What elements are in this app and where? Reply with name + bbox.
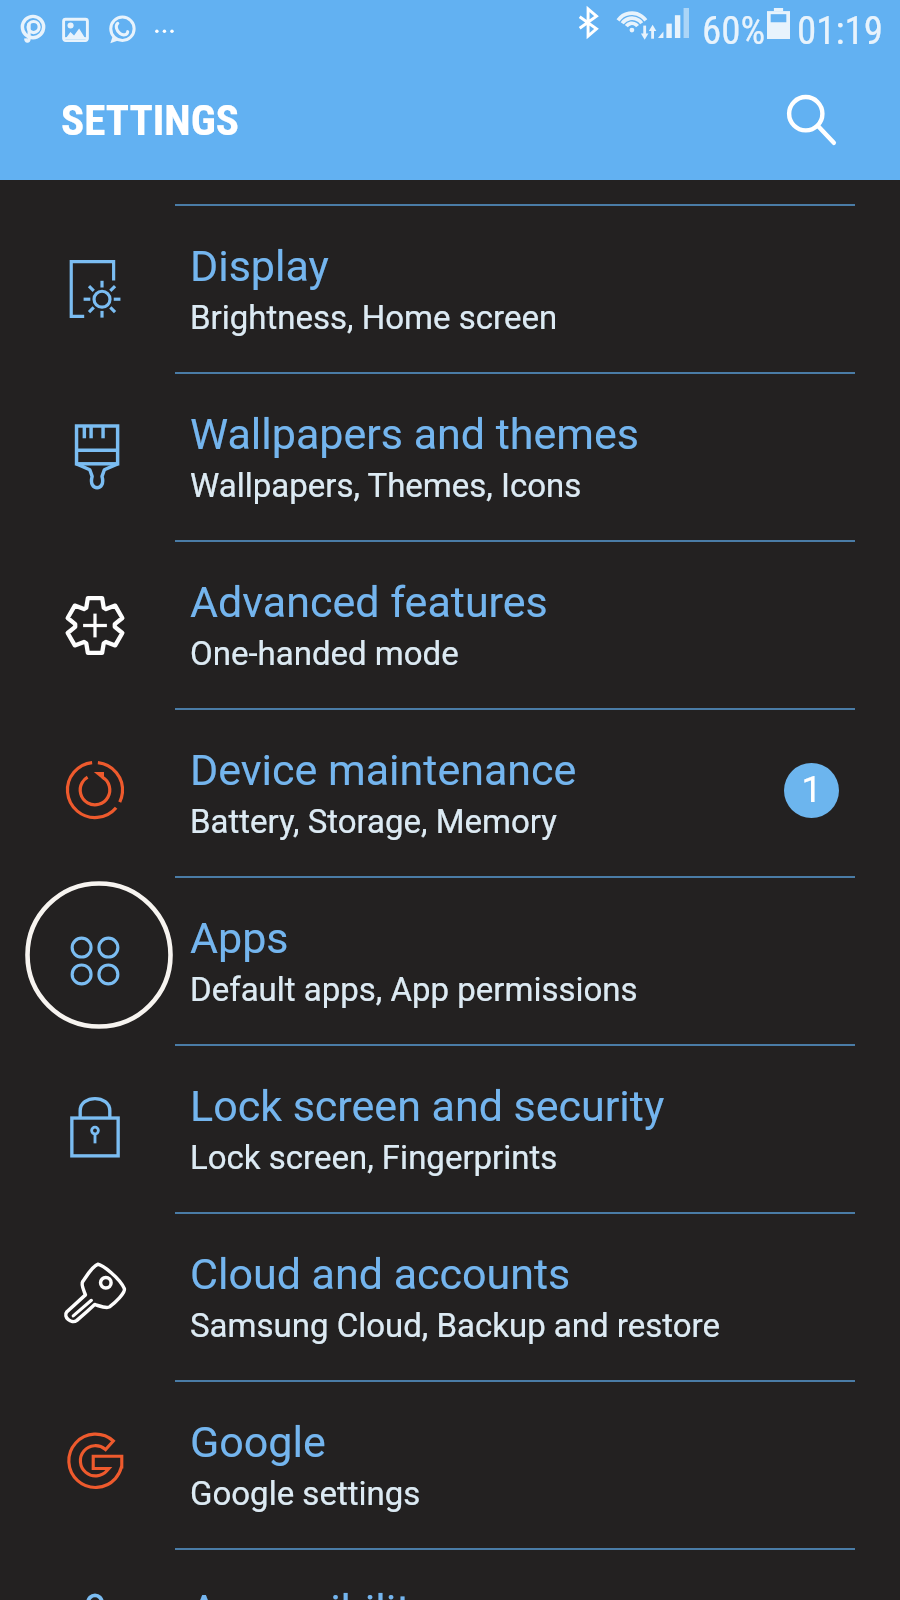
staticText: SETTINGS [61,95,240,145]
button[interactable]: Accessibility [0,1550,900,1600]
button[interactable]: Apps [0,878,900,1046]
button[interactable]: Google [0,1382,900,1550]
staticText: Wallpapers and themes [190,409,639,459]
staticText: Brightness, Home screen [190,298,558,337]
staticText: Apps [190,913,289,963]
staticText: Battery, Storage, Memory [190,802,557,841]
button[interactable]: Display [0,206,900,374]
staticText: Device maintenance [190,745,577,795]
staticText: Google settings [190,1474,421,1513]
button[interactable]: 1 [784,763,839,818]
button[interactable]: Device maintenance [0,710,900,878]
button[interactable]: Advanced features [0,542,900,710]
staticText: Google [190,1417,326,1467]
staticText: Lock screen, Fingerprints [190,1138,558,1177]
staticText: Accessibility [190,1585,431,1600]
staticText: Wallpapers, Themes, Icons [190,466,582,505]
staticText: Lock screen and security [190,1081,665,1131]
button[interactable]: Wallpapers and themes [0,374,900,542]
button[interactable]: Lock screen and security [0,1046,900,1214]
staticText: Advanced features [190,577,548,627]
staticText: Display [190,241,329,291]
button[interactable]: Cloud and accounts [0,1214,900,1382]
staticText: 60% [702,8,766,54]
staticText: 1 [801,769,822,811]
staticText: Cloud and accounts [190,1249,571,1299]
staticText: 01:19 [797,8,884,54]
staticText: Samsung Cloud, Backup and restore [190,1306,720,1345]
staticText: Default apps, App permissions [190,970,638,1009]
button[interactable]: Search [776,85,848,157]
staticText: One-handed mode [190,634,459,673]
